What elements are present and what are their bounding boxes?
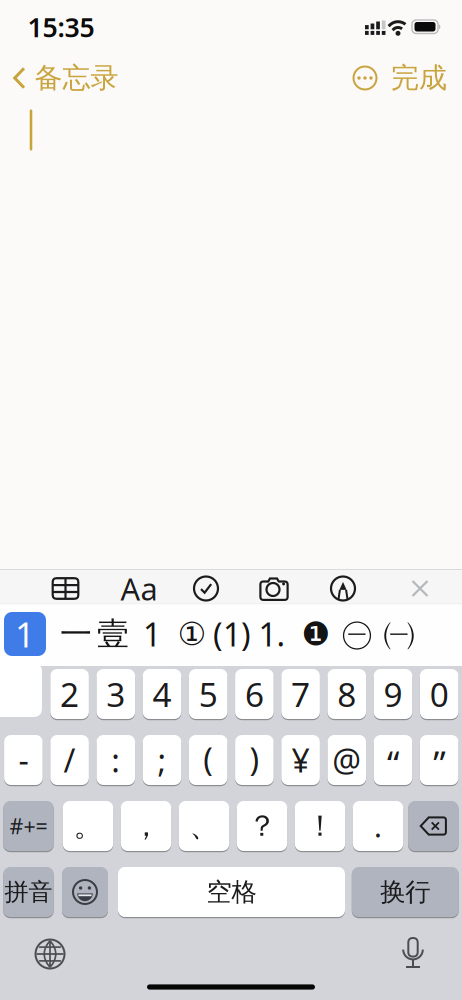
staticText: 1: [15, 611, 35, 657]
button[interactable]: @: [327, 734, 366, 786]
button[interactable]: ❶: [301, 612, 330, 656]
staticText: 3: [106, 671, 125, 717]
staticText: 、: [189, 807, 218, 844]
button[interactable]: 备忘录: [12, 60, 132, 96]
staticText: 壹: [97, 614, 129, 654]
button[interactable]: 9: [374, 668, 412, 720]
button[interactable]: 表格: [45, 572, 85, 605]
staticText: ，: [131, 807, 160, 844]
button[interactable]: 完成: [389, 60, 449, 96]
staticText: ㊀: [341, 614, 373, 654]
staticText: 1: [143, 613, 161, 655]
button[interactable]: 1: [143, 612, 161, 656]
staticText: ”: [433, 739, 445, 787]
button[interactable]: 格式: [117, 572, 161, 605]
button[interactable]: 更多: [350, 63, 380, 93]
button[interactable]: ！: [295, 800, 345, 852]
button[interactable]: ，: [121, 800, 171, 852]
button[interactable]: 删除: [408, 800, 458, 852]
button[interactable]: 、: [179, 800, 229, 852]
button[interactable]: ): [235, 734, 274, 786]
button[interactable]: 空格: [118, 866, 345, 918]
button[interactable]: 0: [420, 668, 458, 720]
staticText: 拼音: [4, 877, 52, 907]
button[interactable]: 听写: [395, 932, 431, 974]
button[interactable]: 切换键盘: [30, 934, 70, 974]
button[interactable]: 关闭: [402, 572, 438, 605]
staticText: 2: [60, 671, 79, 717]
button[interactable]: ？: [237, 800, 287, 852]
button[interactable]: 4: [143, 668, 181, 720]
button[interactable]: 8: [327, 668, 366, 720]
staticText: 完成: [391, 61, 447, 95]
button[interactable]: 表情: [62, 866, 108, 918]
staticText: 一: [60, 614, 92, 654]
staticText: ;: [157, 738, 166, 782]
button[interactable]: 7: [281, 668, 320, 720]
staticText: 8: [337, 671, 356, 717]
staticText: 。: [73, 807, 102, 844]
staticText: 5: [199, 671, 218, 717]
staticText: (1): [213, 613, 251, 655]
button[interactable]: (: [189, 734, 227, 786]
button[interactable]: ”: [420, 734, 458, 786]
staticText: 7: [291, 671, 310, 717]
staticText: 空格: [206, 876, 256, 908]
button[interactable]: 拼音: [3, 866, 54, 918]
button[interactable]: ①: [177, 612, 206, 656]
staticText: 换行: [380, 876, 430, 908]
button[interactable]: 。: [63, 800, 113, 852]
button[interactable]: 6: [235, 668, 274, 720]
button[interactable]: 一: [60, 612, 92, 656]
staticText: 9: [383, 671, 402, 717]
button[interactable]: ㈠: [383, 612, 415, 656]
button[interactable]: /: [50, 734, 89, 786]
staticText: ❶: [301, 616, 330, 652]
staticText: @: [332, 738, 361, 782]
staticText: 备忘录: [34, 61, 118, 95]
staticText: Aa: [120, 568, 157, 609]
staticText: ？: [247, 807, 276, 844]
button[interactable]: 1.: [258, 612, 285, 656]
button[interactable]: 换行: [352, 866, 459, 918]
staticText: ！: [305, 807, 334, 844]
button[interactable]: .: [353, 800, 403, 852]
staticText: .: [374, 806, 382, 846]
staticText: ): [249, 737, 259, 781]
staticText: (: [203, 737, 213, 781]
staticText: -: [18, 738, 28, 782]
staticText: 0: [430, 671, 449, 717]
staticText: ①: [177, 616, 206, 652]
button[interactable]: “: [374, 734, 412, 786]
button[interactable]: 相机: [252, 572, 296, 605]
staticText: 1.: [258, 613, 285, 655]
staticText: 4: [152, 671, 171, 717]
button[interactable]: 核对清单: [186, 572, 226, 605]
button[interactable]: -: [4, 734, 43, 786]
button[interactable]: 标记: [323, 572, 363, 605]
staticText: ㈠: [383, 614, 415, 654]
button[interactable]: 1: [0, 663, 48, 719]
button[interactable]: 壹: [97, 612, 129, 656]
button[interactable]: 2: [50, 668, 89, 720]
button[interactable]: :: [96, 734, 135, 786]
staticText: :: [111, 738, 120, 782]
button[interactable]: 5: [189, 668, 227, 720]
button[interactable]: 3: [96, 668, 135, 720]
button[interactable]: (1): [213, 612, 251, 656]
button[interactable]: ¥: [281, 734, 320, 786]
staticText: ¥: [292, 738, 310, 782]
button[interactable]: #+=: [3, 800, 54, 852]
button[interactable]: ㊀: [341, 612, 373, 656]
staticText: 6: [245, 671, 264, 717]
button[interactable]: ;: [143, 734, 181, 786]
staticText: /: [64, 738, 76, 782]
staticText: #+=: [9, 811, 47, 841]
button[interactable]: 1: [4, 612, 46, 656]
staticText: “: [387, 739, 399, 787]
staticText: 15:35: [27, 9, 94, 45]
